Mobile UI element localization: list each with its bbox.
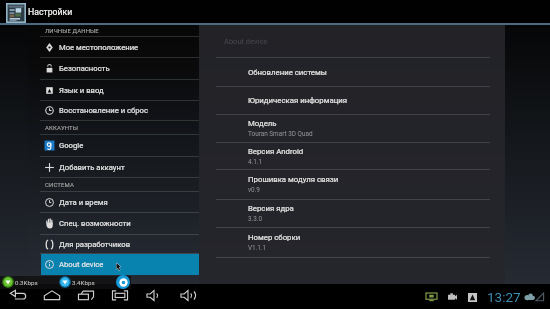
staticText: 13:27 [487,289,521,305]
staticText: 0.3Kbps [15,279,38,286]
staticText: Язык и ввод [59,86,104,95]
button[interactable]: About device [41,254,199,275]
staticText: Для разработчиков [59,240,131,249]
staticText: АККАУНТЫ [45,124,79,131]
button[interactable]: Screenshot [109,284,131,306]
button[interactable]: Версия ядра [199,200,505,227]
button[interactable]: Status: recorder [448,292,457,301]
button[interactable]: Юридическая информация [199,87,505,114]
button[interactable]: Recent apps [75,284,97,306]
staticText: Настройки [28,7,73,17]
staticText: 4.1.1 [248,158,263,166]
button[interactable]: Back [7,284,29,306]
button[interactable]: Номер сборки [199,228,505,257]
button[interactable]: Восстановление и сброс [41,101,199,120]
button[interactable]: Volume down [143,284,165,306]
button[interactable]: Для разработчиков [41,235,199,253]
staticText: Юридическая информация [248,96,348,105]
staticText: Спец. возможности [59,219,131,228]
staticText: Прошивка модуля связи [248,175,339,184]
staticText: 3.3.0 [248,215,263,223]
button[interactable]: Обновление системы [199,58,505,86]
button[interactable]: Добавить аккаунт [41,157,199,177]
staticText: Версия Android [248,147,304,156]
button[interactable]: Спец. возможности [41,213,199,234]
button[interactable]: Status: display [426,292,437,301]
button[interactable]: Status: keyboard [467,292,477,302]
staticText: Мое местоположение [59,43,139,52]
staticText: Версия ядра [248,204,294,213]
staticText: 3.4Kbps [72,279,95,286]
button[interactable]: Network status [523,292,544,302]
button[interactable]: Google [41,135,199,156]
staticText: Дата и время [59,198,108,207]
staticText: Модель [248,119,277,128]
button[interactable]: Версия Android [199,143,505,169]
staticText: Обновление системы [248,68,327,77]
button[interactable]: Quick settings [116,275,130,289]
staticText: Номер сборки [248,233,301,242]
staticText: Восстановление и сброс [59,106,148,115]
button[interactable]: Volume up [177,284,199,306]
button[interactable]: Home [41,284,63,306]
staticText: Google [59,141,84,150]
button[interactable]: App icon [6,3,26,23]
button[interactable]: Модель [199,115,505,142]
staticText: СИСТЕМА [45,181,74,188]
button[interactable]: Мое местоположение [41,37,199,57]
button[interactable]: 3.4Kbps [59,276,95,288]
staticText: v0.9 [248,186,260,194]
staticText: V1.1.1 [248,244,267,252]
staticText: Touran Smart 3D Quad [248,130,313,138]
button[interactable]: Безопасность [41,58,199,79]
button[interactable]: Язык и ввод [41,80,199,100]
staticText: ЛИЧНЫЕ ДАННЫЕ [45,27,99,34]
staticText: Безопасность [59,64,110,73]
staticText: About device [59,260,104,269]
button[interactable]: Дата и время [41,192,199,212]
button[interactable]: 0.3Kbps [2,276,38,288]
button[interactable]: Прошивка модуля связи [199,170,505,199]
staticText: About device [224,37,268,46]
staticText: Добавить аккаунт [59,163,125,172]
